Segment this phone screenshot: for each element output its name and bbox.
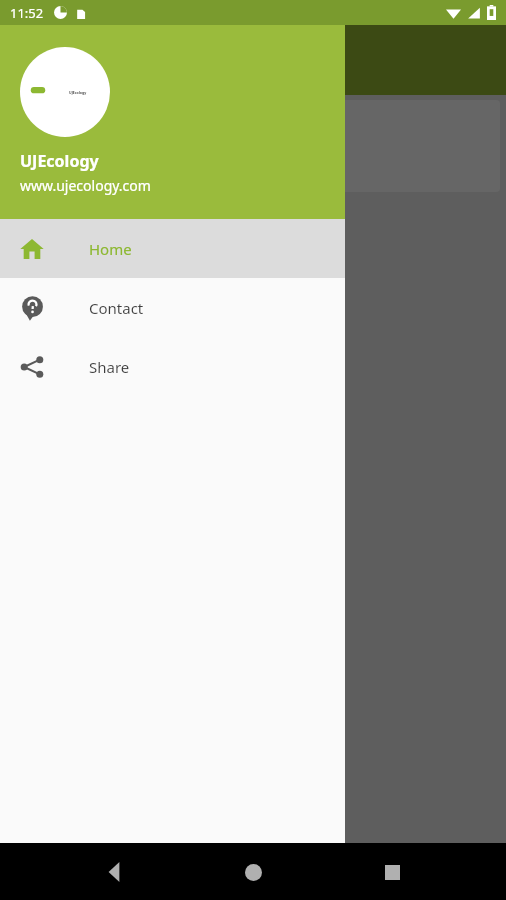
staticText: 11:52 [10,4,44,22]
staticText: UJEcology [69,90,87,95]
button[interactable]: Recent apps [368,848,416,896]
button[interactable]: Back [91,848,139,896]
staticText: www.ujecology.com [20,176,151,195]
button[interactable]: Share [0,337,345,396]
button[interactable]: Ecology [6,100,500,192]
button[interactable]: Home [0,219,345,278]
button[interactable]: Contact [0,278,345,337]
button[interactable]: Home [229,848,277,896]
staticText: Home [89,239,132,259]
staticText: UJEcology [20,150,99,172]
staticText: Ecology [18,122,87,148]
staticText: Contact [89,298,144,318]
staticText: Share [89,357,130,377]
